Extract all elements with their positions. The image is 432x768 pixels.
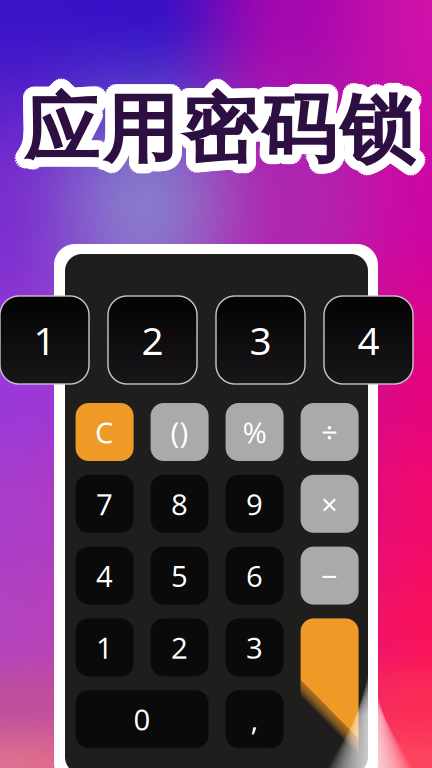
staticText: 应用密码锁 xyxy=(31,91,422,182)
staticText: 3 xyxy=(249,314,271,366)
button[interactable]: 2 xyxy=(108,296,197,384)
staticText: () xyxy=(171,412,189,451)
staticText: 应用密码锁 xyxy=(16,89,407,180)
staticText: 1 xyxy=(96,628,113,667)
staticText: 应用密码锁 xyxy=(21,75,412,166)
button[interactable]: , xyxy=(226,690,284,748)
staticText: , xyxy=(251,700,259,739)
button[interactable]: 1 xyxy=(76,618,134,676)
staticText: 应用密码锁 xyxy=(21,93,412,185)
staticText: 应用密码锁 xyxy=(29,83,420,175)
button[interactable]: % xyxy=(226,403,284,461)
button[interactable]: × xyxy=(301,475,359,533)
staticText: 应用密码锁 xyxy=(24,84,415,176)
staticText: 应用密码锁 xyxy=(19,85,410,177)
staticText: 应用密码锁 xyxy=(17,91,408,182)
staticText: 应用密码锁 xyxy=(27,88,418,180)
staticText: 2 xyxy=(171,628,188,667)
button[interactable]: 9 xyxy=(226,475,284,533)
staticText: 应用密码锁 xyxy=(21,80,412,171)
staticText: 应用密码锁 xyxy=(26,93,417,185)
button[interactable]: C xyxy=(76,403,134,461)
button[interactable]: 1 xyxy=(0,296,89,384)
staticText: 应用密码锁 xyxy=(15,81,406,173)
staticText: 应用密码锁 xyxy=(31,77,422,169)
button[interactable]: 2 xyxy=(151,618,209,676)
staticText: 6 xyxy=(246,556,263,595)
button[interactable]: 0 xyxy=(76,690,209,748)
staticText: 应用密码锁 xyxy=(24,93,415,185)
staticText: 应用密码锁 xyxy=(29,76,420,167)
button[interactable]: − xyxy=(301,547,359,605)
staticText: 应用密码锁 xyxy=(32,89,423,180)
staticText: 4 xyxy=(96,556,113,595)
staticText: 应用密码锁 xyxy=(19,92,410,184)
staticText: × xyxy=(321,484,338,523)
staticText: 应用密码锁 xyxy=(20,81,411,173)
staticText: 应用密码锁 xyxy=(25,89,416,181)
staticText: 应用密码锁 xyxy=(28,87,419,178)
button[interactable]: 3 xyxy=(226,618,284,676)
staticText: 1 xyxy=(33,314,55,366)
staticText: 应用密码锁 xyxy=(33,81,424,173)
staticText: 应用密码锁 xyxy=(28,81,419,173)
staticText: 4 xyxy=(357,314,379,366)
staticText: 应用密码锁 xyxy=(20,87,411,178)
staticText: 3 xyxy=(246,628,263,667)
staticText: 应用密码锁 xyxy=(21,88,412,180)
staticText: 0 xyxy=(134,700,151,739)
button[interactable]: () xyxy=(151,403,209,461)
button[interactable]: Add xyxy=(0,0,432,768)
staticText: 应用密码锁 xyxy=(33,84,424,176)
button[interactable]: 3 xyxy=(216,296,305,384)
staticText: 2 xyxy=(141,314,163,366)
button[interactable]: 8 xyxy=(151,475,209,533)
staticText: 应用密码锁 xyxy=(24,74,415,166)
staticText: 应用密码锁 xyxy=(19,83,410,175)
staticText: ÷ xyxy=(321,412,338,451)
button[interactable]: 4 xyxy=(324,296,413,384)
staticText: 应用密码锁 xyxy=(16,79,407,171)
button[interactable]: 6 xyxy=(226,547,284,605)
staticText: 7 xyxy=(96,484,113,523)
staticText: 应用密码锁 xyxy=(25,79,416,171)
staticText: 应用密码锁 xyxy=(26,75,417,166)
staticText: 应用密码锁 xyxy=(29,92,420,184)
staticText: 应用密码锁 xyxy=(33,86,424,178)
staticText: % xyxy=(243,412,267,451)
button[interactable]: 5 xyxy=(151,547,209,605)
staticText: 应用密码锁 xyxy=(27,80,418,172)
staticText: 5 xyxy=(171,556,188,595)
staticText: 9 xyxy=(246,484,263,523)
staticText: 应用密码锁 xyxy=(17,77,408,169)
button[interactable]: 7 xyxy=(76,475,134,533)
staticText: C xyxy=(95,412,114,451)
staticText: 应用密码锁 xyxy=(29,85,420,177)
staticText: 应用密码锁 xyxy=(32,79,423,171)
staticText: 应用密码锁 xyxy=(14,84,405,176)
staticText: 应用密码锁 xyxy=(19,76,410,167)
staticText: − xyxy=(321,556,338,595)
button[interactable]: ÷ xyxy=(301,403,359,461)
staticText: 8 xyxy=(171,484,188,523)
staticText: 应用密码锁 xyxy=(23,89,414,181)
staticText: 应用密码锁 xyxy=(23,79,414,171)
staticText: 应用密码锁 xyxy=(15,86,406,178)
button[interactable]: 4 xyxy=(76,547,134,605)
